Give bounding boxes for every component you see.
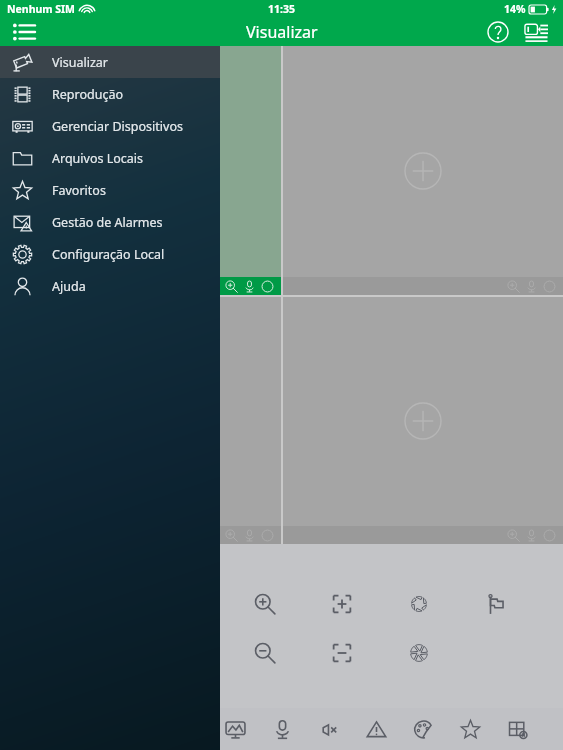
button[interactable]: Record: [543, 280, 556, 293]
button[interactable]: Zoom: [507, 529, 520, 542]
button[interactable]: Gerenciar Dispositivos: [0, 110, 220, 142]
button[interactable]: Iris open: [400, 585, 438, 623]
button[interactable]: Visualizar: [0, 46, 220, 78]
button[interactable]: Audio: [243, 529, 256, 542]
button[interactable]: Talk: [259, 708, 306, 750]
button[interactable]: Zoom: [507, 280, 520, 293]
button[interactable]: Audio: [243, 280, 256, 293]
staticText: Gestão de Alarmes: [52, 214, 163, 231]
staticText: Favoritos: [52, 182, 106, 199]
button[interactable]: Configuração Local: [0, 238, 220, 270]
button[interactable]: Ajuda: [0, 270, 220, 302]
button[interactable]: Menu: [8, 17, 40, 46]
button[interactable]: Zoom: [0, 297, 281, 544]
staticText: 14%: [504, 2, 526, 16]
button[interactable]: Help: [483, 17, 513, 46]
button[interactable]: Record: [261, 280, 274, 293]
button[interactable]: Record: [261, 529, 274, 542]
button[interactable]: Reprodução: [0, 78, 220, 110]
button[interactable]: Favorite: [447, 708, 494, 750]
staticText: Configuração Local: [52, 246, 165, 263]
button[interactable]: Audio: [525, 280, 538, 293]
button[interactable]: Close all: [494, 708, 541, 750]
staticText: Visualizar: [52, 54, 108, 71]
staticText: Visualizar: [246, 21, 318, 43]
staticText: Arquivos Locais: [52, 150, 144, 167]
button[interactable]: Preset: [477, 585, 515, 623]
button[interactable]: Focus near: [323, 585, 361, 623]
button[interactable]: Image settings: [400, 708, 447, 750]
button[interactable]: Favoritos: [0, 174, 220, 206]
button[interactable]: Zoom in: [246, 585, 284, 623]
button[interactable]: Zoom out: [246, 634, 284, 672]
staticText: Gerenciar Dispositivos: [52, 118, 183, 135]
button[interactable]: Layout: [521, 17, 551, 46]
staticText: Ajuda: [52, 278, 86, 295]
button[interactable]: Zoom: [0, 46, 281, 295]
button[interactable]: Record: [543, 529, 556, 542]
button[interactable]: Live stream: [212, 708, 259, 750]
staticText: 11:35: [268, 2, 295, 16]
button[interactable]: Zoom: [225, 529, 238, 542]
button[interactable]: Zoom: [225, 280, 238, 293]
button[interactable]: Gestão de Alarmes: [0, 206, 220, 238]
button[interactable]: Mute: [306, 708, 353, 750]
button[interactable]: Focus far: [323, 634, 361, 672]
button[interactable]: Arquivos Locais: [0, 142, 220, 174]
staticText: Reprodução: [52, 86, 123, 103]
staticText: Nenhum SIM: [7, 2, 76, 16]
button[interactable]: Audio: [525, 529, 538, 542]
button[interactable]: Alarm: [353, 708, 400, 750]
button[interactable]: Iris close: [400, 634, 438, 672]
